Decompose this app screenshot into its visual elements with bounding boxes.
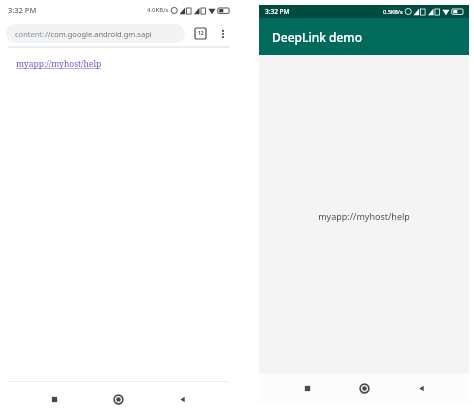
staticText: DeepLink demo bbox=[272, 29, 363, 45]
staticText: 3:32 PM bbox=[8, 5, 37, 15]
button[interactable]: Recent apps bbox=[43, 388, 65, 410]
staticText: myapp://myhost/help bbox=[318, 210, 410, 222]
staticText: 3:32 PM bbox=[265, 7, 290, 16]
staticText: myapp://myhost/help bbox=[16, 58, 102, 70]
staticText: //com.google.android.gm.sapi bbox=[45, 29, 152, 39]
staticText: 0.5KB/s bbox=[383, 8, 403, 15]
staticText: 12 bbox=[198, 30, 204, 37]
button[interactable]: Back bbox=[171, 388, 193, 410]
button[interactable]: Home bbox=[107, 388, 129, 410]
button[interactable]: Switch or close tabs bbox=[192, 25, 209, 42]
button[interactable]: Recent apps bbox=[296, 377, 318, 399]
button[interactable]: Back bbox=[410, 377, 432, 399]
button[interactable]: myapp://myhost/help bbox=[16, 58, 102, 70]
button[interactable]: Home bbox=[353, 377, 375, 399]
staticText: content: bbox=[15, 29, 45, 39]
staticText: 4.0KB/s bbox=[147, 6, 169, 14]
button[interactable]: More options bbox=[214, 25, 231, 42]
button[interactable]: content: bbox=[6, 24, 185, 43]
